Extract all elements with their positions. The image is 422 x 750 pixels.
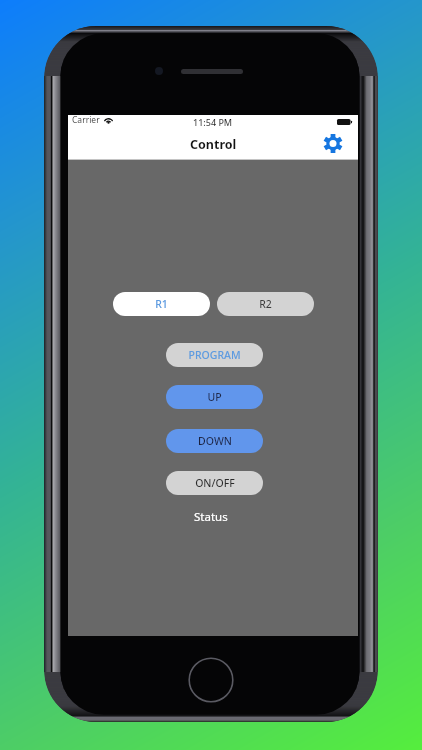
button[interactable]: R1 [113,292,210,316]
staticText: Control [190,136,237,153]
button[interactable]: PROGRAM [166,343,263,367]
staticText: R2 [259,297,272,311]
staticText: UP [207,390,222,404]
staticText: PROGRAM [188,348,241,362]
button[interactable]: R2 [217,292,314,316]
button[interactable]: DOWN [166,429,263,453]
staticText: DOWN [198,434,232,448]
staticText: Carrier [72,114,100,126]
button[interactable]: Settings [322,132,344,154]
button[interactable]: ON/OFF [166,471,263,495]
staticText: 11:54 PM [193,116,233,128]
button[interactable]: UP [166,385,263,409]
staticText: Status [194,509,228,525]
staticText: ON/OFF [195,476,235,490]
staticText: R1 [155,297,168,311]
